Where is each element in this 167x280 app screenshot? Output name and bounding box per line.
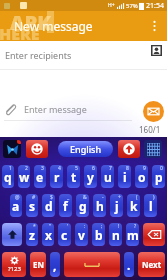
button[interactable]: y xyxy=(84,165,97,188)
button[interactable]: h xyxy=(93,194,106,217)
staticText: Enter message xyxy=(24,103,87,115)
staticText: 7 xyxy=(109,165,112,172)
staticText: HERE xyxy=(0,23,40,45)
button[interactable]: b xyxy=(92,223,105,246)
staticText: ! xyxy=(118,223,120,230)
staticText: o xyxy=(138,169,146,185)
button[interactable]: n xyxy=(109,223,122,246)
button[interactable]: s xyxy=(26,194,38,217)
button[interactable]: English xyxy=(58,141,113,157)
button[interactable]: Attach file xyxy=(0,101,20,117)
button[interactable]: Shift xyxy=(2,223,22,246)
staticText: d xyxy=(45,198,53,214)
button[interactable]: x xyxy=(42,223,54,246)
button[interactable]: m xyxy=(126,223,139,246)
button[interactable]: q xyxy=(2,165,14,188)
staticText: 9 xyxy=(143,165,146,172)
staticText: ( xyxy=(136,194,138,201)
staticText: 160/1 xyxy=(139,124,161,135)
staticText: ) xyxy=(153,194,155,201)
staticText: i xyxy=(123,169,127,185)
button[interactable]: More options xyxy=(145,17,163,35)
button[interactable]: Space xyxy=(64,252,120,277)
staticText: 4 xyxy=(58,165,61,172)
button[interactable]: . xyxy=(124,252,134,277)
button[interactable]: g xyxy=(76,194,89,217)
staticText: l xyxy=(149,198,153,214)
staticText: # xyxy=(32,194,36,201)
button[interactable]: Emoji xyxy=(26,140,48,158)
staticText: @ xyxy=(15,194,20,201)
staticText: Next xyxy=(142,259,162,270)
staticText: e xyxy=(36,169,44,185)
button[interactable]: Enter recipients xyxy=(0,41,167,70)
staticText: New message xyxy=(14,18,93,34)
staticText: 6 xyxy=(92,165,95,172)
staticText: w xyxy=(19,169,30,185)
button[interactable]: o xyxy=(135,165,148,188)
button[interactable]: p xyxy=(152,165,165,188)
staticText: 3 xyxy=(41,165,44,172)
staticText: " xyxy=(49,223,52,230)
button[interactable]: e xyxy=(34,165,46,188)
staticText: ? xyxy=(134,223,137,230)
button[interactable]: Send message xyxy=(143,101,164,122)
staticText: j xyxy=(115,198,119,214)
button[interactable]: EN xyxy=(30,252,46,277)
button[interactable]: Choose contacts xyxy=(150,44,163,57)
button[interactable]: j xyxy=(110,194,123,217)
button[interactable]: u xyxy=(101,165,114,188)
staticText: ' xyxy=(67,223,69,230)
staticText: : xyxy=(84,223,86,230)
button[interactable]: d xyxy=(42,194,55,217)
button[interactable]: New message xyxy=(0,11,167,41)
staticText: y xyxy=(87,169,94,185)
staticText: n xyxy=(112,227,120,243)
button[interactable]: i xyxy=(118,165,131,188)
staticText: 2 xyxy=(25,165,28,172)
button[interactable]: l xyxy=(144,194,157,217)
button[interactable]: f xyxy=(59,194,72,217)
staticText: a xyxy=(12,198,20,214)
staticText: t xyxy=(71,169,77,185)
button[interactable]: , xyxy=(50,252,60,277)
staticText: u xyxy=(104,169,112,185)
button[interactable]: Keyboard layout xyxy=(144,140,162,158)
staticText: , xyxy=(53,257,57,273)
staticText: * xyxy=(33,223,36,230)
button[interactable]: z xyxy=(26,223,38,246)
staticText: H+ xyxy=(108,2,115,9)
staticText: 8 xyxy=(126,165,129,172)
staticText: f xyxy=(63,198,68,214)
button[interactable]: Next xyxy=(138,252,165,277)
staticText: 1 xyxy=(9,165,12,172)
button[interactable]: a xyxy=(10,194,22,217)
staticText: & xyxy=(83,194,87,201)
staticText: 57% xyxy=(126,2,138,10)
button[interactable]: v xyxy=(75,223,88,246)
staticText: c xyxy=(61,227,68,243)
staticText: EN xyxy=(33,259,44,270)
button[interactable]: Themes xyxy=(118,140,140,158)
button[interactable]: Backspace xyxy=(143,223,165,246)
staticText: r xyxy=(54,169,60,185)
staticText: English xyxy=(70,143,102,155)
staticText: APK xyxy=(10,9,51,36)
button[interactable]: w xyxy=(18,165,30,188)
button[interactable]: t xyxy=(67,165,80,188)
button[interactable]: r xyxy=(50,165,63,188)
staticText: 21:54 xyxy=(146,1,164,11)
staticText: 0 xyxy=(160,165,163,172)
staticText: b xyxy=(95,227,103,243)
staticText: g xyxy=(79,198,87,214)
staticText: k xyxy=(130,198,138,214)
staticText: _ xyxy=(67,194,70,201)
staticText: x xyxy=(45,227,52,243)
button[interactable]: c xyxy=(58,223,71,246)
staticText: z xyxy=(29,227,35,243)
button[interactable]: Keyboard app xyxy=(3,140,21,158)
button[interactable]: k xyxy=(127,194,140,217)
staticText: v xyxy=(78,227,85,243)
button[interactable]: ?123 xyxy=(2,252,26,277)
staticText: h xyxy=(96,198,104,214)
